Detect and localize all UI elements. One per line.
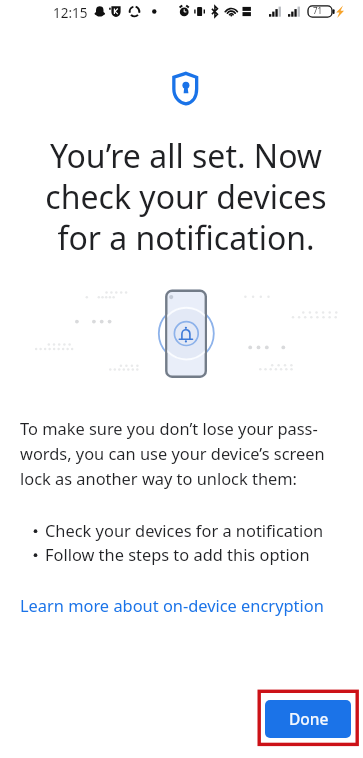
staticText: To make sure you don’t lose your pass- w…: [20, 417, 325, 490]
staticText: 71: [313, 5, 323, 16]
staticText: Done: [289, 708, 329, 729]
staticText: Follow the steps to add this option: [45, 543, 310, 565]
staticText: Check your devices for a notification: [45, 519, 324, 541]
button[interactable]: Done: [265, 700, 351, 738]
staticText: You’re all set. Now check your devices f…: [20, 134, 352, 260]
button[interactable]: Learn more about on-device encryption: [20, 592, 324, 618]
staticText: Learn more about on-device encryption: [20, 594, 324, 616]
staticText: 12:15: [53, 4, 88, 22]
